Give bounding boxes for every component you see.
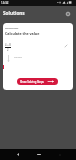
button[interactable]: Show Solving Steps (17, 78, 58, 85)
button[interactable]: Edit (62, 42, 69, 49)
staticText: 14:32 (1, 1, 9, 5)
staticText: 2 (7, 48, 9, 52)
staticText: Calculate (14, 56, 22, 58)
staticText: Show Solving Steps (20, 80, 44, 84)
staticText: SOLVING STEPS (5, 27, 19, 30)
staticText: Calculate the value (5, 31, 40, 36)
button[interactable]: Back (7, 149, 28, 160)
button[interactable]: Home (28, 149, 49, 160)
staticText: 4 + 8 (5, 43, 11, 47)
button[interactable]: Settings (63, 9, 73, 19)
staticText: Solutions (3, 10, 25, 16)
